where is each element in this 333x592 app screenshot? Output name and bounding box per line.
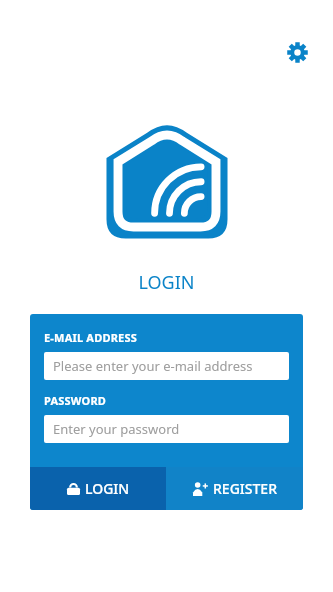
staticText: Enter your password xyxy=(53,420,180,438)
button[interactable]: Please enter your e-mail address xyxy=(44,352,289,380)
button[interactable]: Enter your password xyxy=(44,415,289,443)
staticText: LOGIN xyxy=(85,479,130,498)
button[interactable]: Settings xyxy=(281,36,314,69)
staticText: E-MAIL ADDRESS xyxy=(44,330,137,345)
staticText: PASSWORD xyxy=(44,393,107,408)
staticText: REGISTER xyxy=(213,479,277,498)
staticText: LOGIN xyxy=(138,270,195,295)
button[interactable]: REGISTER xyxy=(166,467,303,510)
button[interactable]: LOGIN xyxy=(30,467,166,510)
staticText: Please enter your e-mail address xyxy=(53,357,253,375)
